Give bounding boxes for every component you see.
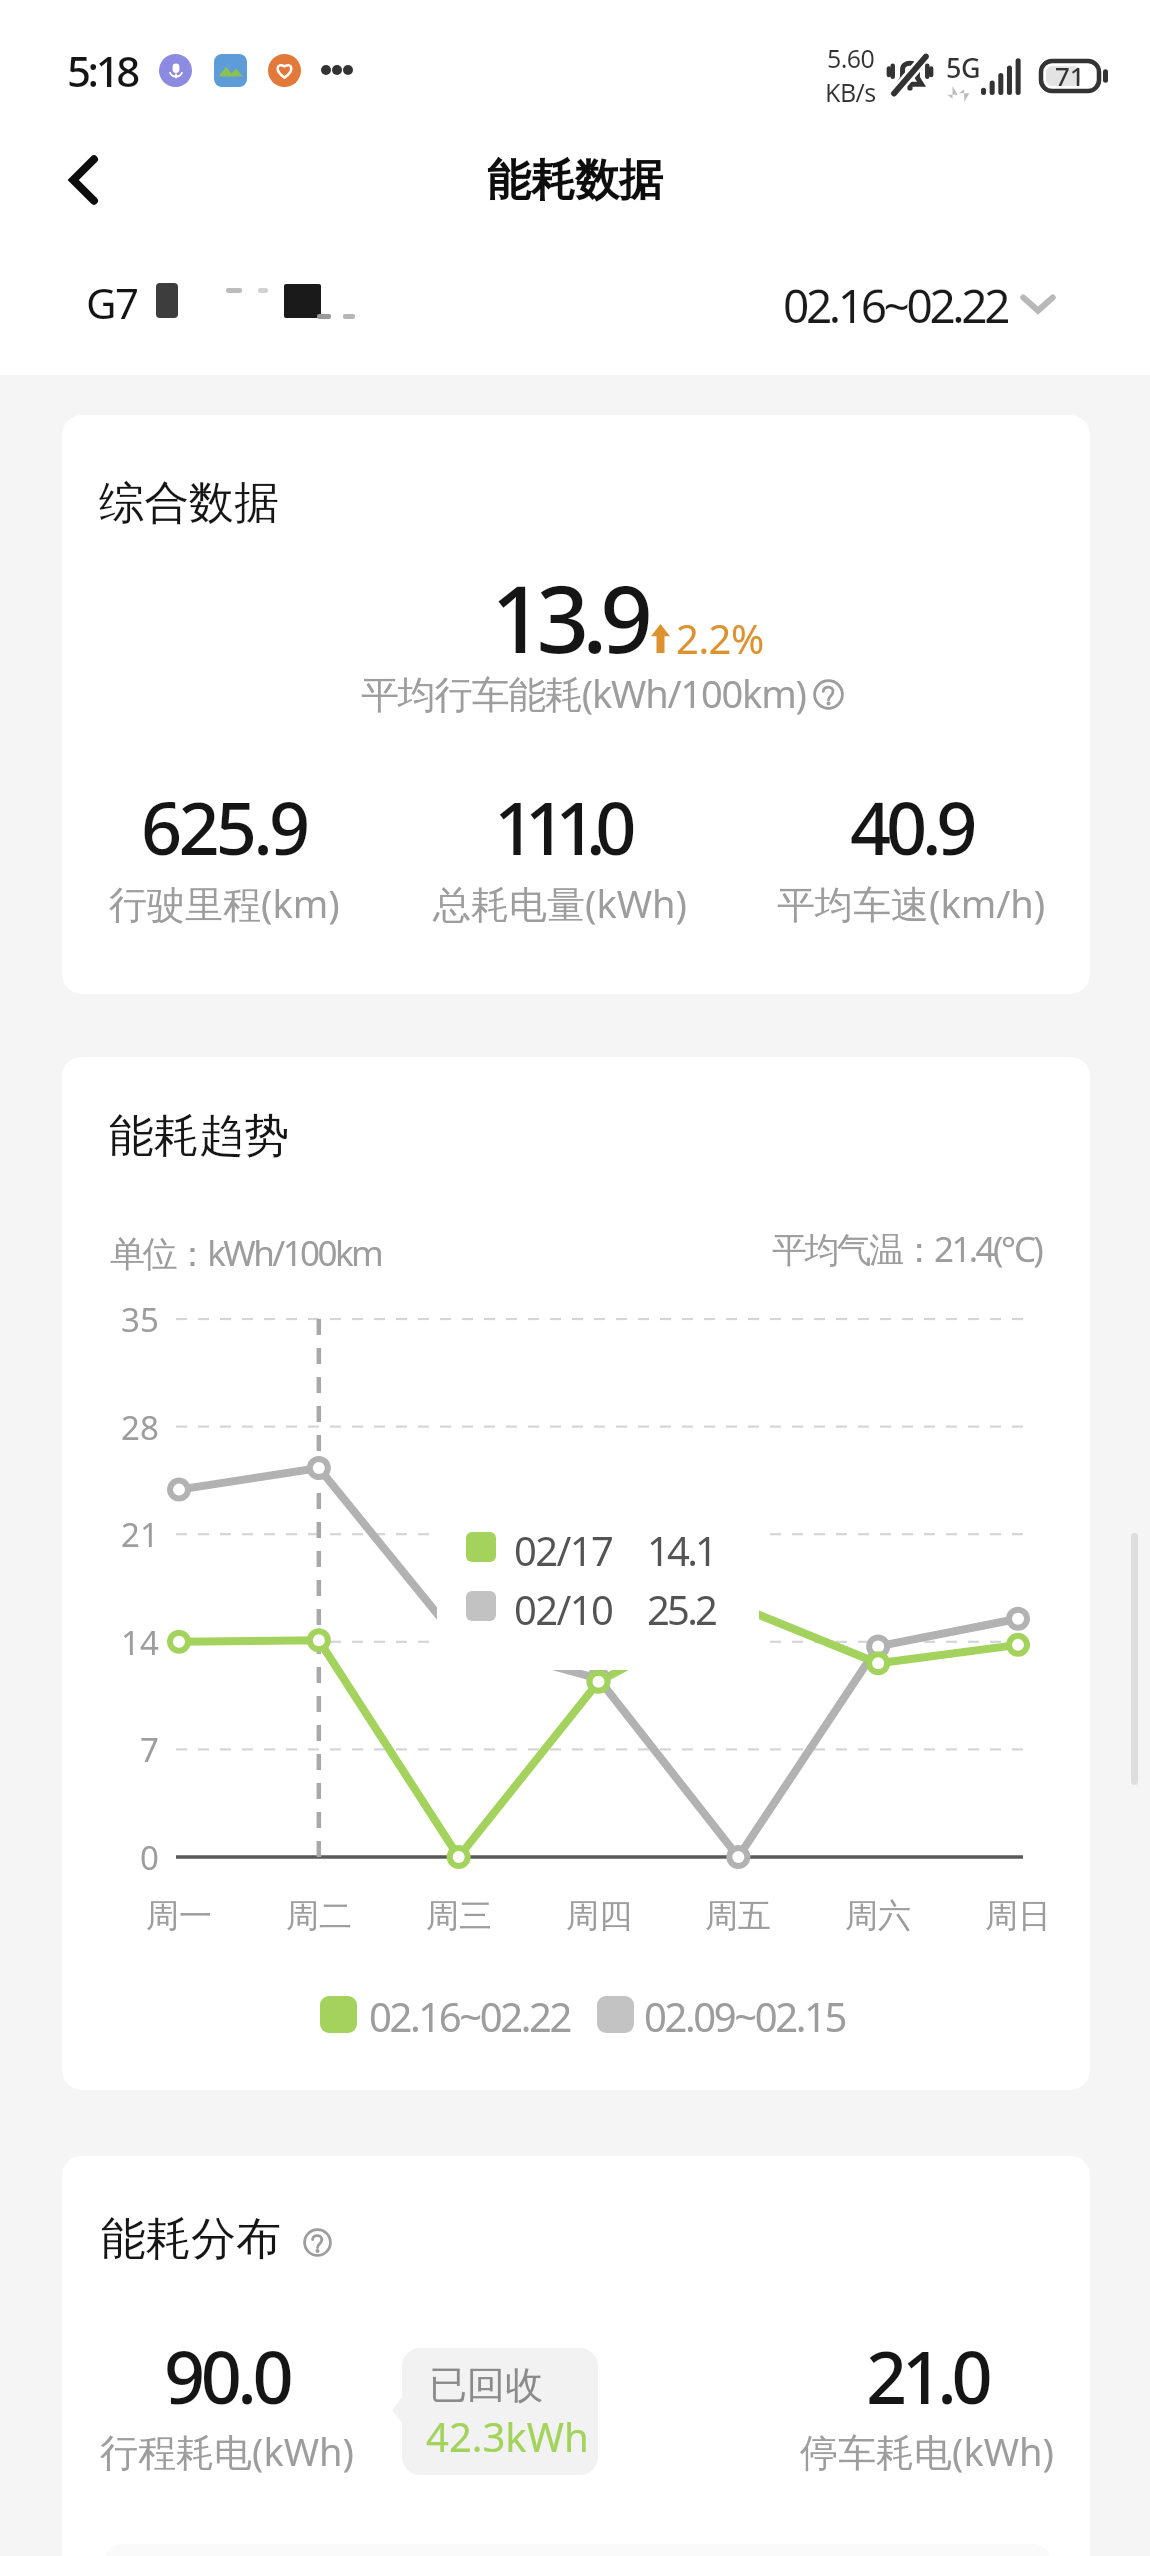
staticText: 停车耗电(kWh) [800, 2425, 1054, 2477]
staticText: 周日 [985, 1895, 1051, 1937]
staticText: 平均行车能耗(kWh/100km) [361, 667, 806, 719]
staticText: 周四 [566, 1895, 632, 1937]
staticText: 5G [946, 49, 981, 86]
staticText: 40.9 [850, 778, 973, 876]
staticText: 02.09~02.15 [644, 1989, 845, 2043]
staticText: 能耗分布 [101, 2211, 281, 2268]
staticText: 35 [121, 1297, 159, 1342]
staticText: 周二 [286, 1895, 352, 1937]
staticText: 42.3kWh [426, 2409, 589, 2463]
staticText: 13.9 [491, 555, 646, 680]
staticText: 已回收 [429, 2361, 543, 2409]
staticText: 综合数据 [99, 475, 279, 532]
staticText: 周六 [845, 1895, 911, 1937]
staticText: 周三 [426, 1895, 492, 1937]
staticText: 25.2 [647, 1582, 716, 1636]
staticText: 能耗趋势 [109, 1108, 289, 1165]
staticText: 周五 [705, 1895, 771, 1937]
staticText: 平均气温：21.4(℃) [772, 1225, 1042, 1273]
staticText: 单位：kWh/100km [110, 1229, 382, 1277]
staticText: 周一 [146, 1895, 212, 1937]
staticText: 0 [140, 1835, 159, 1880]
staticText: 平均车速(km/h) [777, 877, 1046, 929]
staticText: 14 [121, 1620, 159, 1665]
staticText: 02/10 [514, 1582, 613, 1636]
staticText: 02.16~02.22 [369, 1989, 570, 2043]
staticText: KB/s [825, 75, 876, 109]
staticText: 行驶里程(km) [109, 877, 340, 929]
staticText: 02/17 [514, 1523, 613, 1577]
staticText: 625.9 [141, 778, 307, 876]
staticText: 5.60 [827, 41, 875, 75]
staticText: 2.2% [676, 611, 764, 665]
staticText: 总耗电量(kWh) [433, 877, 687, 929]
staticText: 21 [121, 1512, 159, 1557]
staticText: G7 [86, 274, 138, 331]
staticText: 5:18 [67, 42, 137, 99]
staticText: 行程耗电(kWh) [100, 2425, 354, 2477]
staticText: 90.0 [164, 2327, 290, 2425]
staticText: 7 [140, 1727, 159, 1772]
staticText: 28 [121, 1405, 159, 1450]
staticText: 21.0 [866, 2327, 988, 2425]
staticText: 能耗数据 [487, 153, 663, 208]
staticText: 02.16~02.22 [783, 274, 1008, 334]
button[interactable]: Back [30, 125, 140, 235]
staticText: 111.0 [494, 778, 626, 876]
button[interactable]: 02.16~02.22 [783, 274, 1054, 334]
staticText: 14.1 [647, 1523, 716, 1577]
staticText: 71 [1055, 58, 1085, 93]
